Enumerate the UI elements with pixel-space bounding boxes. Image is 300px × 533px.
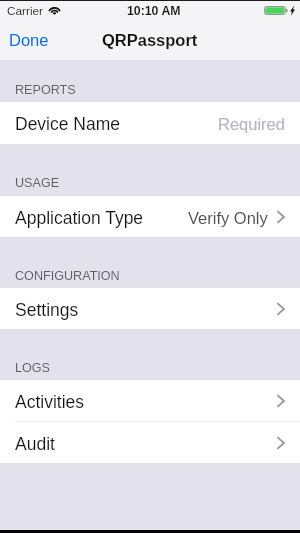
button[interactable]: Done <box>0 20 70 60</box>
button[interactable]: Settings <box>0 288 300 329</box>
staticText: Audit <box>15 434 55 454</box>
staticText: LOGS <box>15 361 50 375</box>
staticText: USAGE <box>15 176 60 190</box>
staticText: Required <box>218 115 285 133</box>
staticText: Application Type <box>15 208 144 228</box>
button[interactable]: Audit <box>0 422 300 463</box>
staticText: CONFIGURATION <box>15 269 120 283</box>
staticText: Activities <box>15 392 85 412</box>
staticText: Done <box>9 31 49 49</box>
button[interactable]: Activities <box>0 380 300 421</box>
button[interactable]: Application Type <box>0 196 300 237</box>
staticText: 10:10 AM <box>127 4 181 18</box>
staticText: Verify Only <box>188 209 268 227</box>
button[interactable]: Device Name <box>0 102 300 144</box>
staticText: Carrier <box>7 4 44 17</box>
staticText: QRPassport <box>102 31 198 49</box>
staticText: REPORTS <box>15 83 76 97</box>
staticText: Settings <box>15 300 79 320</box>
staticText: Device Name <box>15 114 121 134</box>
